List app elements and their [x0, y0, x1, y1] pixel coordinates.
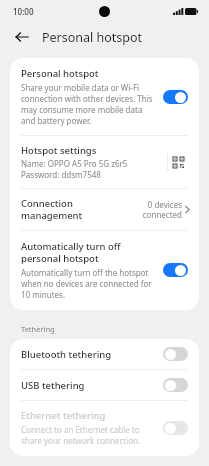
staticText: Share your mobile data or Wi-Fi connecti…: [21, 82, 155, 126]
button[interactable]: Ethernet tethering: [10, 401, 199, 456]
staticText: Name: OPPO A5 Pro 5G z6r5: [21, 158, 128, 169]
staticText: Connect to an Ethernet cable to share yo…: [21, 424, 155, 446]
staticText: USB tethering: [21, 379, 163, 392]
staticText: Password: ddsm7548: [21, 169, 101, 180]
staticText: Connection management: [21, 197, 130, 222]
staticText: Personal hotspot: [42, 29, 143, 46]
staticText: Automatically turn off personal hotspot: [21, 240, 155, 265]
button[interactable]: Hotspot settings: [10, 136, 199, 188]
staticText: Bluetooth tethering: [21, 348, 163, 361]
button[interactable]: Automatically turn off personal hotspot: [10, 231, 199, 310]
button[interactable]: Back: [11, 26, 33, 48]
staticText: Ethernet tethering: [21, 409, 106, 422]
button[interactable]: USB tethering: [10, 370, 199, 400]
staticText: Automatically turn off the hotspot when …: [21, 267, 155, 300]
button[interactable]: Personal hotspot: [10, 58, 199, 135]
staticText: Hotspot settings: [21, 144, 97, 157]
staticText: Tethering: [21, 324, 55, 334]
staticText: Personal hotspot: [21, 67, 99, 80]
staticText: 10:00: [13, 6, 34, 17]
button[interactable]: Connection management: [10, 189, 199, 230]
button[interactable]: Share hotspot QR code: [168, 152, 188, 172]
button[interactable]: Bluetooth tethering: [10, 339, 199, 369]
staticText: 0 devices connected: [136, 199, 182, 220]
